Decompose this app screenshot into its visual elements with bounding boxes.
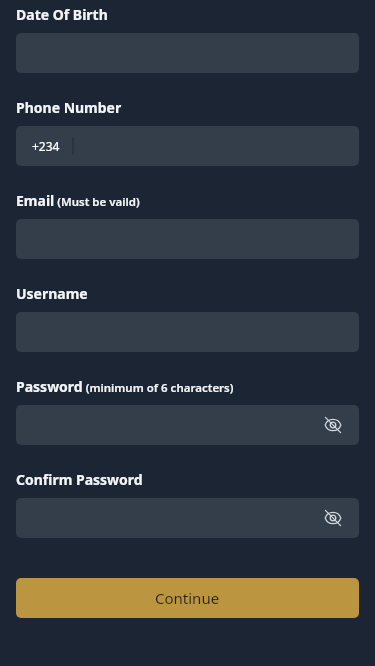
button[interactable]: Show password [315, 407, 351, 443]
staticText: Date Of Birth [16, 5, 108, 24]
staticText: +234 [32, 138, 60, 154]
staticText: Phone Number [16, 98, 122, 117]
staticText: Confirm Password [16, 470, 143, 489]
button[interactable]: Password [16, 405, 359, 445]
staticText: Username [16, 284, 88, 303]
button[interactable]: Continue [16, 578, 359, 618]
button[interactable]: Confirm Password [16, 498, 359, 538]
staticText: Password (minimum of 6 characters) [16, 377, 234, 396]
button[interactable]: Show confirm password [315, 500, 351, 536]
button[interactable]: Phone Number [16, 126, 359, 166]
staticText: Continue [155, 588, 220, 608]
staticText: Email (Must be vaild) [16, 191, 140, 210]
